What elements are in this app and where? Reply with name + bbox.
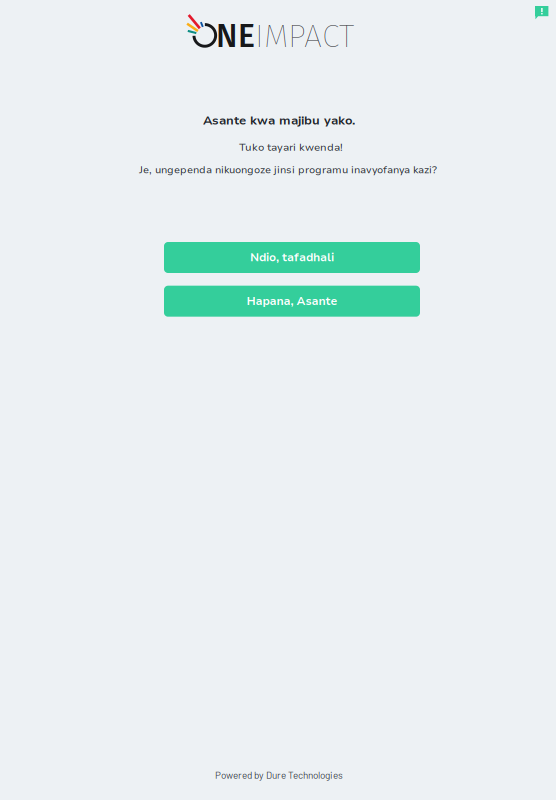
button[interactable]: Hapana, Asante <box>164 286 420 317</box>
staticText: Asante kwa majibu yako. <box>203 112 355 129</box>
button[interactable]: Ndio, tafadhali <box>164 242 420 273</box>
staticText: Hapana, Asante <box>246 293 337 309</box>
staticText: Je, ungependa nikuongoze jinsi programu … <box>139 163 437 177</box>
staticText: IMPACT <box>255 17 354 55</box>
staticText: Ndio, tafadhali <box>250 250 334 265</box>
staticText: Powered by Dure Technologies <box>215 769 343 781</box>
staticText: NE <box>216 17 255 55</box>
button[interactable]: Feedback <box>535 6 549 20</box>
staticText: Tuko tayari kwenda! <box>239 140 343 154</box>
